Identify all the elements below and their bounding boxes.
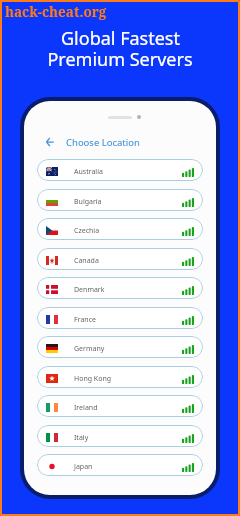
staticText: Australia bbox=[74, 167, 103, 177]
staticText: Global Fastest bbox=[61, 26, 180, 51]
button[interactable]: Denmark bbox=[37, 277, 203, 299]
staticText: Japan bbox=[74, 462, 93, 472]
staticText: Canada bbox=[74, 256, 99, 266]
button[interactable]: Bulgaria bbox=[37, 189, 203, 211]
button[interactable]: Ireland bbox=[37, 395, 203, 417]
staticText: Premium Servers bbox=[47, 47, 193, 72]
staticText: Ireland bbox=[74, 403, 98, 413]
staticText: Choose Location bbox=[66, 136, 140, 149]
staticText: France bbox=[74, 315, 96, 325]
button[interactable]: Czechia bbox=[37, 218, 203, 240]
button[interactable]: Back bbox=[46, 135, 54, 149]
button[interactable]: Germany bbox=[37, 336, 203, 358]
staticText: Germany bbox=[74, 344, 105, 354]
button[interactable]: Canada bbox=[37, 248, 203, 270]
staticText: Hong Kong bbox=[74, 374, 112, 384]
staticText: Czechia bbox=[74, 226, 100, 236]
button[interactable]: Japan bbox=[37, 454, 203, 476]
staticText: Italy bbox=[74, 433, 89, 443]
staticText: Bulgaria bbox=[74, 197, 102, 207]
button[interactable]: Italy bbox=[37, 425, 203, 447]
button[interactable]: France bbox=[37, 307, 203, 329]
button[interactable]: Australia bbox=[37, 159, 203, 181]
staticText: hack-cheat.org bbox=[5, 3, 107, 21]
button[interactable]: Hong Kong bbox=[37, 366, 203, 388]
staticText: Denmark bbox=[74, 285, 105, 295]
